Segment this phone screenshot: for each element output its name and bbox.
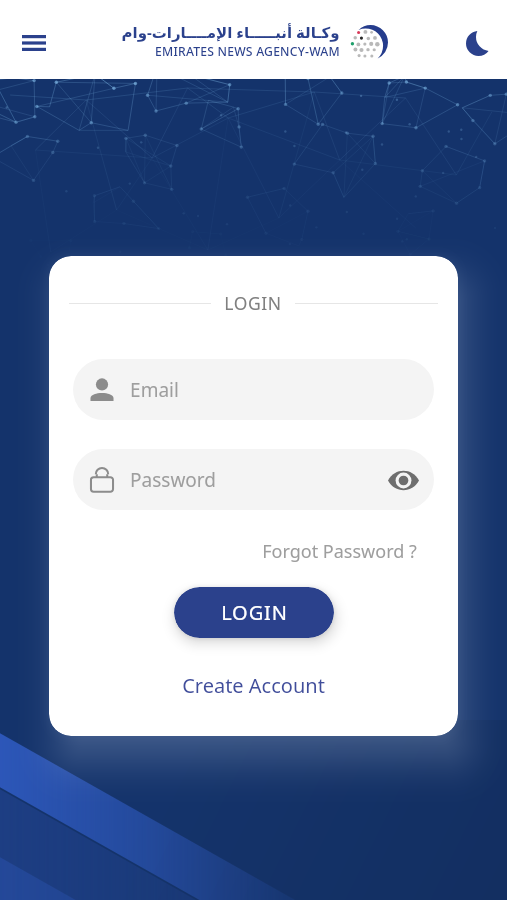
staticText: LOGIN [221,599,288,626]
button[interactable]: Create Account [178,668,329,703]
staticText: LOGIN [224,291,282,315]
button[interactable]: Email [73,359,434,420]
staticText: وكـالة أنبـــــاء الإمــــارات-وام [121,22,340,42]
button[interactable]: Menu [10,19,58,67]
staticText: Password [130,467,216,493]
staticText: EMIRATES NEWS AGENCY-WAM [155,43,340,60]
button[interactable]: Forgot Password ? [258,535,421,568]
button[interactable]: Dark mode [458,23,498,63]
button[interactable]: LOGIN [174,587,334,638]
button[interactable]: Show password [381,458,425,502]
button[interactable]: Password [73,449,434,510]
staticText: Email [130,377,179,403]
